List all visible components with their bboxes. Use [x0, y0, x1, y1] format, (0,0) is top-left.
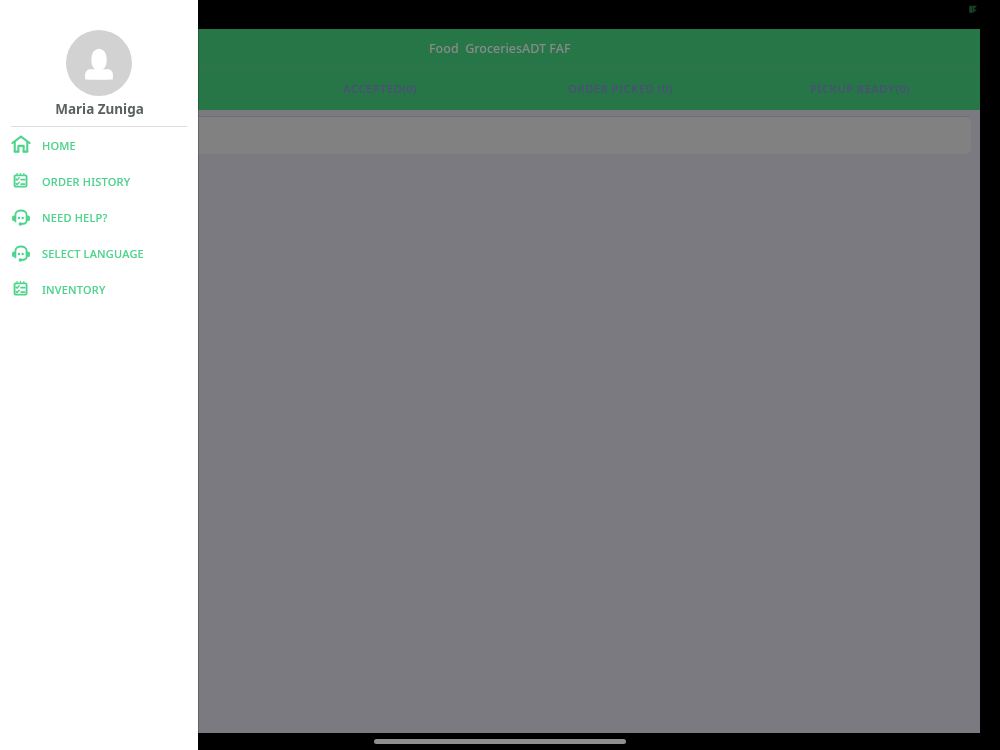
button[interactable]: ACCEPTED(0) — [260, 68, 500, 110]
other: Battery — [968, 4, 979, 15]
staticText: ORDER HISTORY — [42, 174, 131, 189]
button[interactable]: SELECT LANGUAGE — [0, 235, 198, 271]
staticText: PICKUP READY(0) — [810, 81, 911, 97]
button[interactable]: NEED HELP? — [0, 199, 198, 235]
button[interactable]: Profile photo — [0, 0, 198, 122]
button[interactable] — [8, 117, 971, 154]
staticText: ACCEPTED(0) — [343, 81, 418, 97]
button[interactable]: INVENTORY — [0, 271, 198, 307]
other: Profile photo — [66, 30, 132, 96]
button[interactable]: ORDER PICKED (0) — [500, 68, 740, 110]
staticText: ORDER PICKED (0) — [568, 81, 673, 97]
button[interactable]: ORDER HISTORY — [0, 163, 198, 199]
staticText: Food GroceriesADT FAF — [429, 40, 571, 57]
staticText: HOME — [42, 138, 76, 153]
staticText: NEED HELP? — [42, 210, 108, 225]
button[interactable]: PICKUP READY(0) — [740, 68, 980, 110]
button[interactable]: HOME — [0, 127, 198, 163]
staticText: Maria Zuniga — [55, 100, 144, 118]
staticText: SELECT LANGUAGE — [42, 246, 144, 261]
staticText: INVENTORY — [42, 282, 106, 297]
